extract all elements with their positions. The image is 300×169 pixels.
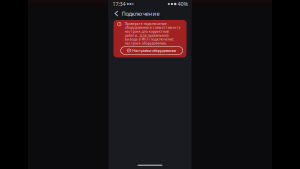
staticText: 40%	[177, 0, 187, 8]
staticText: Настройки оборудования	[132, 48, 176, 53]
staticText: Подключение	[121, 10, 159, 17]
staticText: Проверьте подключение оборудования и сов…	[125, 21, 181, 45]
staticText: 17:34	[112, 0, 125, 8]
button[interactable]: Настройки оборудования	[121, 47, 183, 54]
button[interactable]: Back	[111, 8, 121, 19]
